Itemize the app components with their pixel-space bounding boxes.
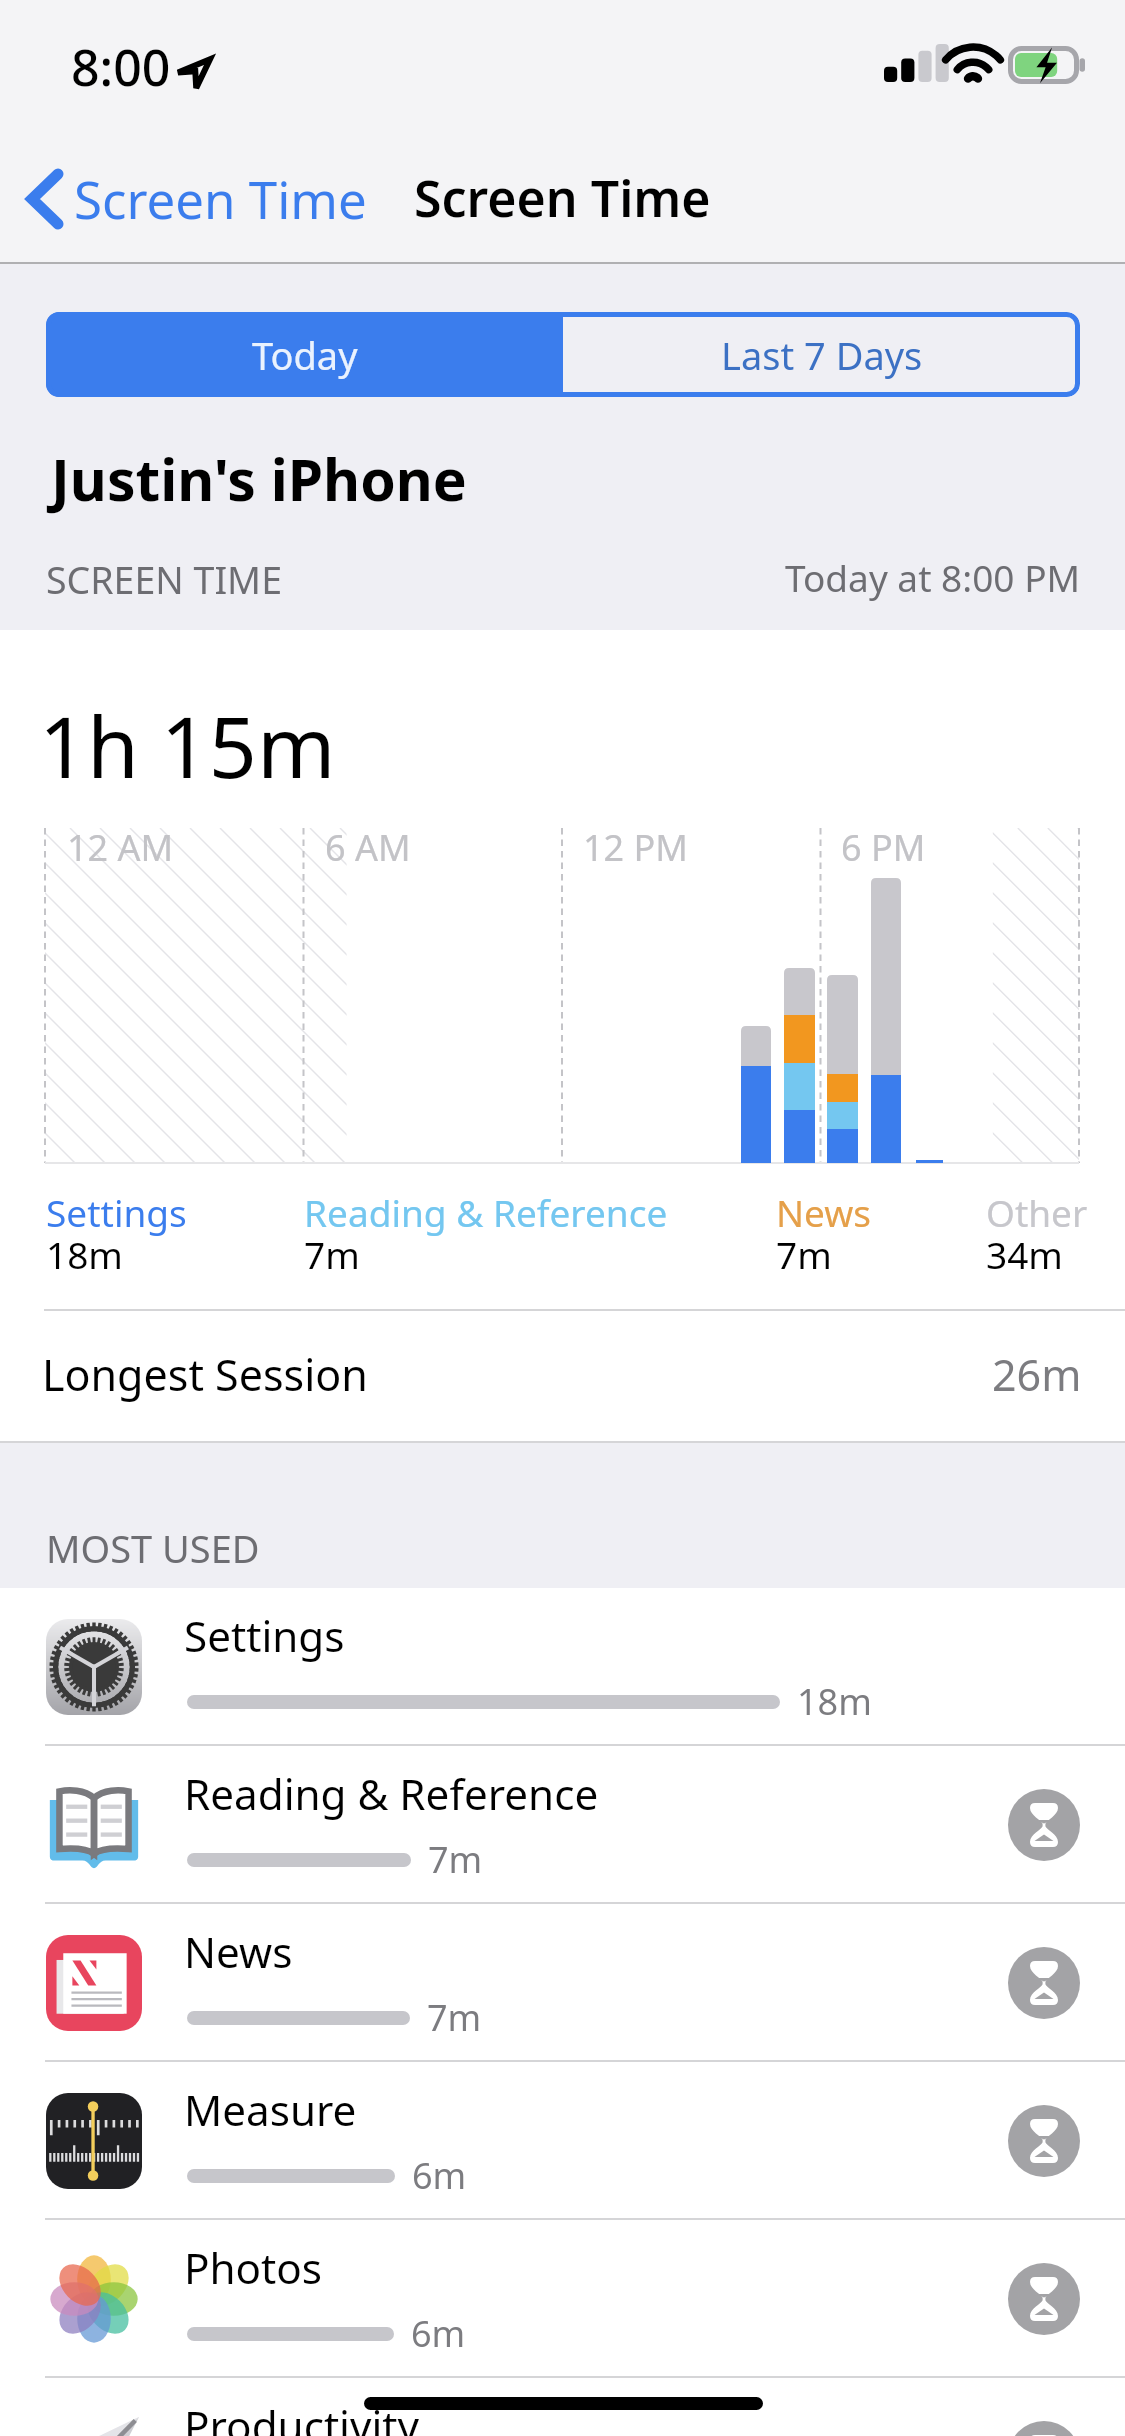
staticText: Settings — [184, 1607, 345, 1664]
staticText: News — [184, 1923, 293, 1980]
staticText: SCREEN TIME — [46, 554, 282, 605]
button[interactable]: Settings — [0, 1588, 1125, 1746]
button[interactable]: Today — [46, 312, 563, 397]
button[interactable]: News — [0, 1904, 1125, 2062]
staticText: 12 AM — [67, 823, 174, 872]
staticText: 7m — [427, 1993, 482, 2042]
button[interactable]: App limit — [1008, 2421, 1080, 2436]
staticText: Productivity — [184, 2397, 420, 2436]
staticText: News — [776, 1187, 872, 1237]
button[interactable]: Last 7 Days — [563, 312, 1080, 397]
staticText: 18m — [46, 1229, 123, 1279]
staticText: 6m — [412, 2151, 467, 2200]
staticText: 7m — [428, 1835, 483, 1884]
staticText: Reading & Reference — [184, 1765, 599, 1822]
staticText: 7m — [304, 1229, 360, 1279]
staticText: Measure — [184, 2081, 357, 2138]
staticText: 18m — [797, 1677, 872, 1726]
button[interactable]: Photos — [0, 2220, 1125, 2378]
button[interactable]: App limit — [1008, 2105, 1080, 2177]
button[interactable]: App limit — [1008, 1947, 1080, 2019]
staticText: 6 AM — [325, 823, 411, 872]
staticText: 26m — [992, 1345, 1082, 1404]
staticText: Settings — [46, 1187, 187, 1237]
button[interactable]: Measure — [0, 2062, 1125, 2220]
staticText: 1h 15m — [39, 688, 336, 802]
button[interactable]: Reading & Reference — [0, 1746, 1125, 1904]
staticText: 6m — [411, 2309, 466, 2358]
button[interactable]: App limit — [1008, 1789, 1080, 1861]
staticText: Photos — [184, 2239, 323, 2296]
staticText: Longest Session — [42, 1345, 368, 1404]
staticText: 6 PM — [841, 823, 926, 872]
button[interactable]: App limit — [1008, 2263, 1080, 2335]
staticText: Today at 8:00 PM — [785, 552, 1081, 602]
staticText: Today — [252, 329, 358, 381]
staticText: 7m — [776, 1229, 832, 1279]
staticText: Last 7 Days — [721, 329, 923, 381]
staticText: Justin's iPhone — [51, 440, 467, 518]
button[interactable]: Productivity — [0, 2378, 1125, 2436]
staticText: Reading & Reference — [304, 1187, 668, 1237]
staticText: 8:00 — [71, 33, 171, 101]
staticText: 12 PM — [583, 823, 688, 872]
staticText: Screen Time — [414, 164, 711, 232]
staticText: 34m — [986, 1229, 1063, 1279]
button[interactable]: Longest Session — [0, 1311, 1125, 1442]
button[interactable]: Back to Screen Time — [0, 150, 400, 262]
staticText: Other — [986, 1187, 1088, 1237]
staticText: MOST USED — [46, 1522, 260, 1574]
staticText: Screen Time — [74, 164, 367, 233]
